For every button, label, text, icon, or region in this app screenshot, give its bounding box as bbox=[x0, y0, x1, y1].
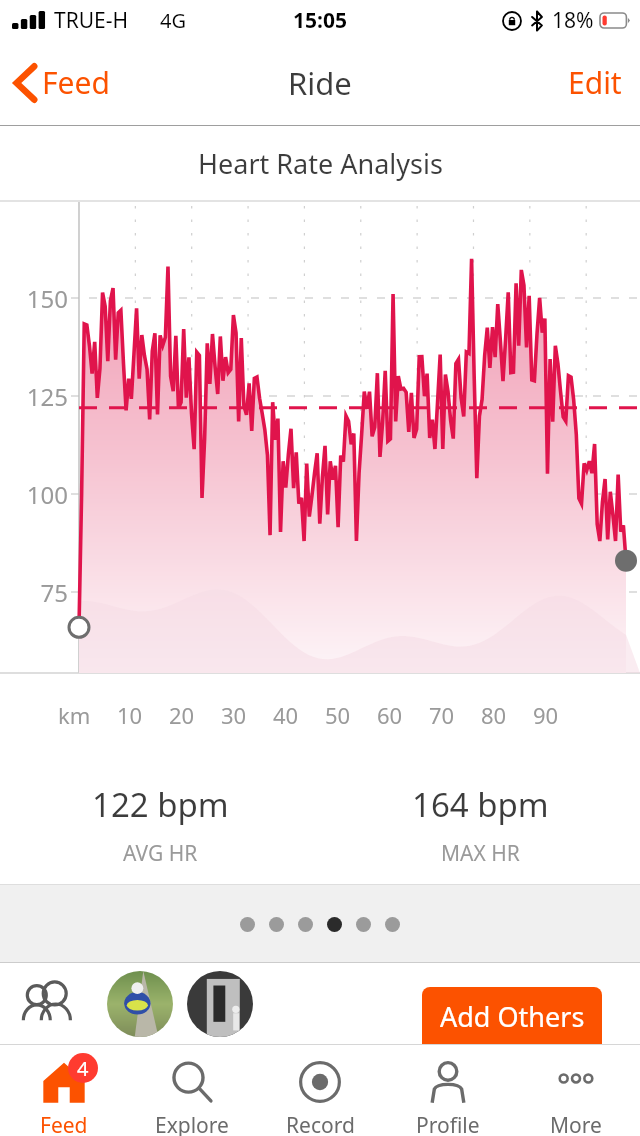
button[interactable]: Record bbox=[256, 1045, 384, 1136]
button[interactable] bbox=[187, 971, 253, 1037]
staticText: 150 bbox=[0, 282, 68, 315]
staticText: 75 bbox=[0, 576, 68, 609]
staticText: 80 bbox=[481, 700, 507, 730]
staticText: 15:05 bbox=[293, 6, 347, 35]
staticText: 125 bbox=[0, 380, 68, 413]
button[interactable]: Edit bbox=[568, 62, 622, 103]
staticText: 4G bbox=[160, 7, 186, 34]
staticText: Add Others bbox=[440, 998, 585, 1035]
staticText: 10 bbox=[117, 700, 143, 730]
button[interactable]: Profile bbox=[384, 1045, 512, 1136]
button[interactable]: 4 bbox=[0, 1045, 128, 1136]
staticText: Explore bbox=[155, 1111, 229, 1136]
staticText: 70 bbox=[429, 700, 455, 730]
staticText: 60 bbox=[377, 700, 403, 730]
button[interactable]: Explore bbox=[128, 1045, 256, 1136]
staticText: 4 bbox=[77, 1055, 89, 1082]
staticText: Record bbox=[286, 1111, 355, 1136]
staticText: AVG HR bbox=[123, 839, 198, 868]
staticText: MAX HR bbox=[441, 839, 520, 868]
staticText: 164 bpm bbox=[412, 782, 549, 827]
button[interactable]: Add Others bbox=[422, 987, 602, 1045]
staticText: Feed bbox=[40, 1111, 88, 1136]
staticText: TRUE-H bbox=[54, 6, 129, 35]
other: Participants bbox=[20, 982, 76, 1026]
staticText: 18% bbox=[552, 6, 594, 35]
staticText: Ride bbox=[288, 62, 352, 104]
staticText: km bbox=[58, 700, 91, 730]
staticText: Profile bbox=[416, 1111, 480, 1136]
staticText: 20 bbox=[169, 700, 195, 730]
staticText: Feed bbox=[42, 62, 110, 103]
button[interactable]: More bbox=[512, 1045, 640, 1136]
staticText: 50 bbox=[325, 700, 351, 730]
button[interactable]: 122 bpm bbox=[0, 760, 320, 885]
staticText: 122 bpm bbox=[92, 782, 229, 827]
button[interactable]: 164 bpm bbox=[320, 760, 640, 885]
button[interactable] bbox=[107, 971, 173, 1037]
staticText: More bbox=[550, 1111, 602, 1136]
staticText: 40 bbox=[273, 700, 299, 730]
staticText: Heart Rate Analysis bbox=[198, 145, 443, 182]
staticText: 90 bbox=[533, 700, 559, 730]
staticText: 30 bbox=[221, 700, 247, 730]
staticText: 100 bbox=[0, 478, 68, 511]
button[interactable]: Feed bbox=[14, 62, 110, 103]
